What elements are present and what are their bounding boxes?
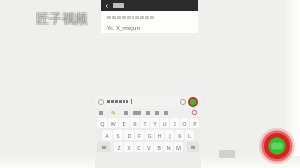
staticText: Z xyxy=(117,144,121,151)
button[interactable]: X xyxy=(124,142,133,152)
button[interactable]: C xyxy=(134,142,143,152)
button[interactable]: Z xyxy=(114,142,123,152)
staticText: L xyxy=(188,132,191,139)
staticText: H xyxy=(157,132,162,139)
staticText: Y xyxy=(153,120,157,127)
staticText: E xyxy=(122,120,126,127)
button[interactable]: Y xyxy=(150,118,159,128)
staticText: C xyxy=(137,144,141,151)
button[interactable]: Keyboard mode xyxy=(98,99,104,105)
staticText: A xyxy=(105,132,109,139)
staticText: B xyxy=(157,144,161,151)
button[interactable]: N xyxy=(164,142,173,152)
staticText: G xyxy=(147,132,152,139)
button[interactable]: Yc, X_mejun xyxy=(101,11,198,33)
button[interactable]: W xyxy=(108,118,118,128)
button[interactable]: Back xyxy=(101,0,198,11)
button[interactable]: Shift xyxy=(97,142,110,152)
button[interactable]: Q xyxy=(97,118,107,128)
staticText: 匠子视频 xyxy=(35,11,87,27)
button[interactable]: U xyxy=(160,118,169,128)
staticText: R xyxy=(133,120,137,127)
staticText: 匠子视频 xyxy=(37,9,89,25)
staticText: X xyxy=(127,144,131,151)
button[interactable]: R xyxy=(130,118,139,128)
button[interactable]: G xyxy=(145,130,154,140)
button[interactable]: J xyxy=(165,130,174,140)
button[interactable]: O xyxy=(180,118,189,128)
staticText: P xyxy=(193,120,197,127)
staticText: F xyxy=(138,132,141,139)
button[interactable]: V xyxy=(144,142,153,152)
button[interactable]: Emoji xyxy=(180,99,186,105)
button[interactable]: K xyxy=(175,130,184,140)
button[interactable]: P xyxy=(190,118,199,128)
staticText: 匠子视频 xyxy=(36,10,88,26)
button[interactable]: S xyxy=(113,130,123,140)
staticText: V xyxy=(147,144,151,151)
staticText: J xyxy=(169,132,171,139)
staticText: 匠子视频 xyxy=(35,9,87,25)
staticText: T xyxy=(143,120,147,127)
button[interactable]: A xyxy=(102,130,112,140)
staticText: 匠子视频 xyxy=(37,11,89,27)
button[interactable]: D xyxy=(124,130,134,140)
staticText: K xyxy=(178,132,182,139)
staticText: I xyxy=(174,120,176,127)
button[interactable]: F xyxy=(135,130,144,140)
staticText: U xyxy=(162,120,167,127)
button[interactable] xyxy=(110,110,116,115)
staticText: W xyxy=(110,120,116,127)
button[interactable]: More candidates xyxy=(192,110,197,115)
button[interactable]: I xyxy=(170,118,179,128)
button[interactable]: Record xyxy=(188,97,198,107)
button[interactable]: Keyboard mode xyxy=(95,95,201,108)
button[interactable]: H xyxy=(155,130,164,140)
staticText: N xyxy=(166,144,171,151)
staticText: Yc, X_mejun xyxy=(107,24,141,32)
staticText: M xyxy=(176,144,181,151)
staticText: Q xyxy=(100,120,105,127)
button[interactable]: Backspace xyxy=(187,142,199,152)
button[interactable]: Back xyxy=(104,3,110,9)
button[interactable]: L xyxy=(185,130,194,140)
button[interactable]: B xyxy=(154,142,163,152)
button[interactable]: E xyxy=(119,118,129,128)
button[interactable]: M xyxy=(174,142,183,152)
button[interactable]: Record video xyxy=(259,128,295,164)
staticText: O xyxy=(182,120,187,127)
staticText: S xyxy=(116,132,120,139)
button[interactable]: T xyxy=(140,118,149,128)
staticText: D xyxy=(127,132,132,139)
